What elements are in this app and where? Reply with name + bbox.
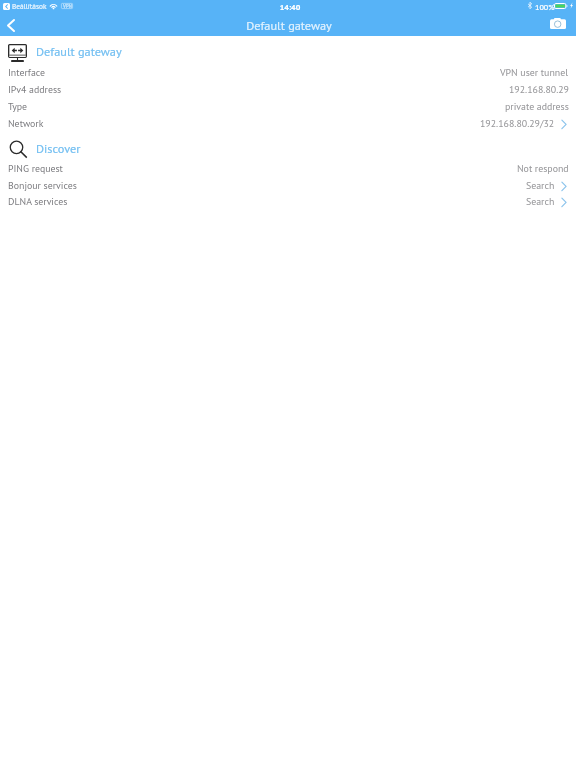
staticText: Search [526, 195, 555, 208]
button[interactable]: Interface [0, 64, 576, 81]
button[interactable]: PING request [0, 160, 576, 177]
staticText: 192.168.80.29 [509, 83, 569, 96]
button[interactable]: Type [0, 98, 576, 115]
staticText: Default gateway [36, 43, 122, 59]
staticText: Not respond [517, 162, 569, 175]
button[interactable]: Bonjour services [0, 177, 576, 194]
staticText: 100% [535, 2, 555, 12]
button[interactable]: Network [0, 115, 576, 132]
staticText: Search [526, 179, 555, 192]
staticText: Default gateway [1, 17, 576, 33]
staticText: Beállítások [12, 2, 47, 11]
button[interactable]: Discover [0, 136, 576, 160]
staticText: Interface [8, 66, 46, 79]
staticText: private address [505, 100, 569, 113]
staticText: 14:40 [2, 2, 576, 12]
button[interactable]: Camera [546, 14, 576, 36]
staticText: PING request [8, 162, 63, 175]
staticText: VPN [63, 3, 72, 9]
button[interactable]: IPv4 address [0, 81, 576, 98]
button[interactable]: Default gateway [0, 40, 576, 64]
button[interactable]: Back to Settings [3, 3, 10, 10]
button[interactable]: Back [0, 14, 26, 36]
staticText: IPv4 address [8, 83, 62, 96]
staticText: Bonjour services [8, 179, 77, 192]
staticText: DLNA services [8, 195, 68, 208]
staticText: Discover [36, 140, 81, 156]
button[interactable]: DLNA services [0, 193, 576, 210]
staticText: VPN user tunnel [500, 66, 569, 79]
staticText: Type [8, 100, 28, 113]
staticText: Network [8, 117, 44, 130]
staticText: 192.168.80.29/32 [480, 117, 555, 130]
